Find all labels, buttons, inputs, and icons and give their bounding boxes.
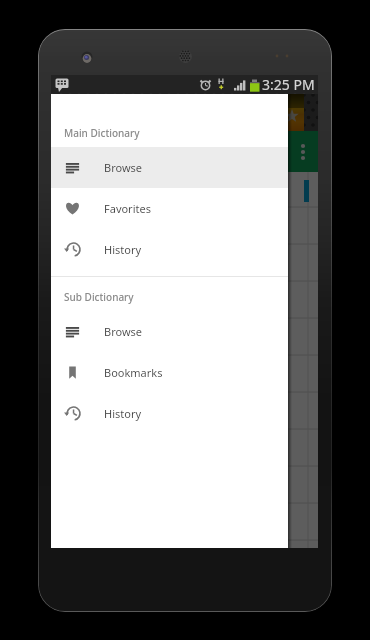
staticText: Main Dictionary	[64, 126, 140, 140]
button[interactable]: More options	[292, 133, 314, 171]
staticText: 3:25 PM	[262, 75, 315, 94]
staticText: History	[104, 406, 142, 421]
button[interactable]: Browse	[51, 147, 288, 188]
staticText: Bookmarks	[104, 365, 163, 380]
staticText: Browse	[104, 160, 143, 175]
staticText: History	[104, 242, 142, 257]
button[interactable]: Favorites	[51, 188, 288, 229]
button[interactable]: History	[51, 229, 288, 270]
button[interactable]: Browse	[51, 311, 288, 352]
staticText: Browse	[104, 324, 143, 339]
button[interactable]: Bookmarks	[51, 352, 288, 393]
staticText: Favorites	[104, 201, 151, 216]
staticText: Sub Dictionary	[64, 290, 134, 304]
button[interactable]: History	[51, 393, 288, 434]
